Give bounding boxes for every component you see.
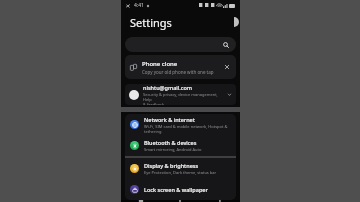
staticText: Security & privacy, device management, H… [143, 92, 225, 105]
button[interactable]: Network & internet [125, 114, 236, 135]
button[interactable]: Lock screen & wallpaper [125, 179, 236, 200]
staticText: Wi-Fi, SIM card & mobile network, Hotspo… [144, 124, 228, 134]
staticText: Smart mirroring, Android Auto [144, 147, 202, 152]
staticText: Phone clone [142, 60, 178, 68]
staticText: Settings [130, 15, 172, 30]
button[interactable]: Phone clone [125, 55, 236, 79]
button[interactable]: Home [160, 200, 200, 202]
staticText: Eye Protection, Dark theme, status bar [144, 170, 217, 175]
staticText: nishtu@gmail.com [143, 84, 193, 91]
staticText: Copy your old phone with one tap [142, 69, 214, 75]
staticText: Display & brightness [144, 162, 199, 169]
button[interactable]: Recents [121, 200, 160, 202]
other: More [227, 92, 232, 97]
staticText: Bluetooth & devices [144, 139, 197, 146]
button[interactable]: Back [200, 200, 240, 202]
button[interactable]: nishtu@gmail.com [125, 84, 236, 105]
button[interactable]: Bluetooth & devices [125, 135, 236, 156]
button[interactable]: Search settings [125, 37, 236, 52]
button[interactable]: Dismiss [223, 63, 231, 71]
staticText: 4:41 [134, 2, 144, 9]
button[interactable]: Display & brightness [125, 158, 236, 179]
staticText: Network & internet [144, 116, 195, 123]
staticText: Lock screen & wallpaper [144, 186, 208, 193]
